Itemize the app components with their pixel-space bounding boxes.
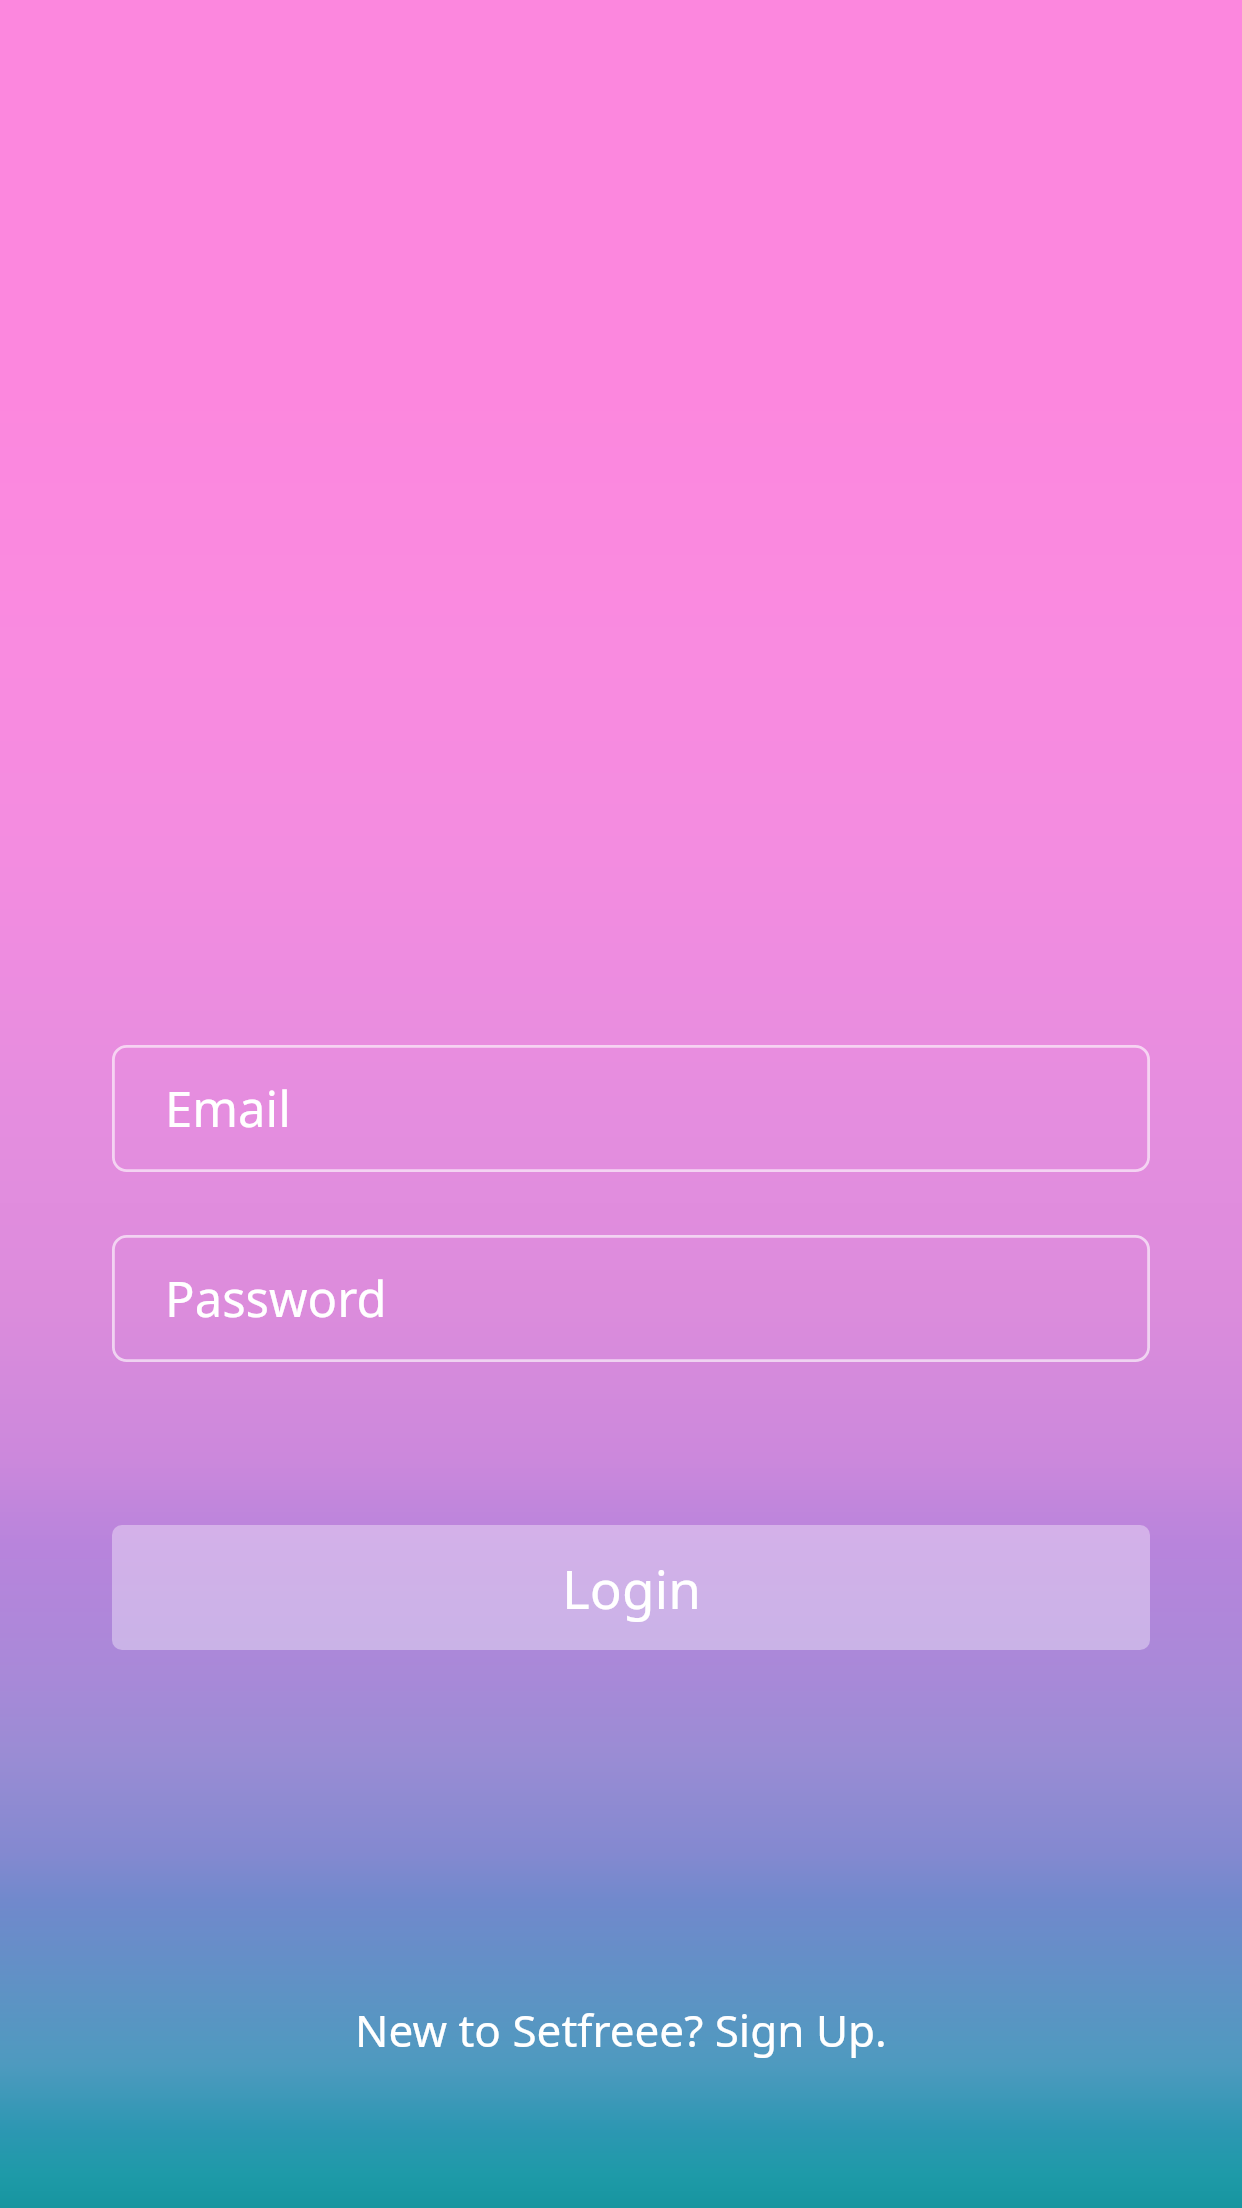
staticText: New to Setfreee? Sign Up. xyxy=(355,2000,887,2060)
button[interactable]: Login xyxy=(112,1525,1150,1650)
button[interactable]: New to Setfreee? Sign Up. xyxy=(0,1994,1242,2066)
staticText: Password xyxy=(165,1265,387,1332)
button[interactable]: Password xyxy=(112,1235,1150,1362)
staticText: Email xyxy=(165,1075,291,1142)
button[interactable]: Email xyxy=(112,1045,1150,1172)
staticText: Login xyxy=(562,1552,701,1624)
